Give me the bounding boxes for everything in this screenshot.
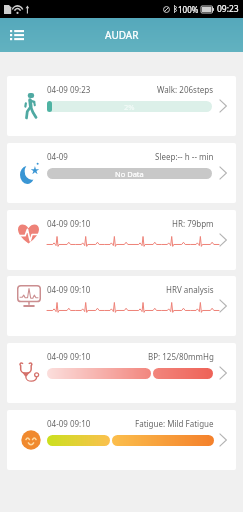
staticText: 2% (124, 102, 135, 112)
staticText: HRV analysis (166, 284, 214, 295)
staticText: 04-09 09:10 (47, 351, 91, 362)
button[interactable]: Fatigue (7, 410, 236, 470)
button[interactable]: Sleep (7, 143, 236, 203)
staticText: Fatigue: Mild Fatigue (135, 418, 214, 429)
staticText: BP: 125/80mmHg (148, 351, 214, 362)
staticText: 04-09 09:10 (47, 418, 91, 429)
button[interactable]: Heart rate (7, 210, 236, 270)
staticText: 04-09 09:23 (47, 84, 91, 95)
staticText: 04-09 09:10 (47, 284, 91, 295)
staticText: No Data (115, 169, 144, 179)
staticText: 09:23 (217, 3, 239, 15)
staticText: 04-09 09:10 (47, 218, 91, 229)
button[interactable]: Blood pressure (7, 343, 236, 403)
staticText: Sleep:-- h -- min (155, 151, 214, 162)
staticText: 04-09 (47, 151, 68, 162)
staticText: Walk: 206steps (157, 84, 214, 95)
button[interactable]: HRV analysis (7, 276, 236, 336)
button[interactable]: Menu (0, 18, 34, 52)
button[interactable]: Walk steps (7, 76, 236, 136)
staticText: HR: 79bpm (172, 218, 214, 229)
staticText: 100% (178, 4, 199, 15)
staticText: AUDAR (105, 28, 139, 42)
